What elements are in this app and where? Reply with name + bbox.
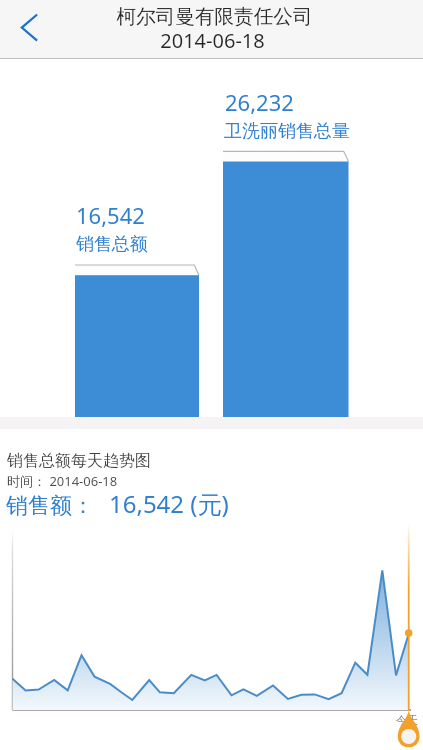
staticText: 今天 bbox=[396, 713, 418, 727]
staticText: 柯尔司曼有限责任公司 bbox=[3, 4, 423, 29]
staticText: 时间： 2014-06-18 bbox=[7, 472, 118, 490]
staticText: 销售总额 bbox=[76, 233, 148, 256]
button[interactable]: Back bbox=[0, 0, 58, 58]
staticText: 16,542 (元) bbox=[109, 487, 229, 520]
staticText: 26,232 bbox=[225, 87, 294, 117]
staticText: 2014-06-18 bbox=[1, 27, 423, 54]
staticText: 销售额： bbox=[6, 492, 94, 520]
staticText: 16,542 bbox=[76, 200, 145, 230]
staticText: 销售总额每天趋势图 bbox=[7, 451, 151, 471]
staticText: 卫洗丽销售总量 bbox=[224, 120, 350, 143]
